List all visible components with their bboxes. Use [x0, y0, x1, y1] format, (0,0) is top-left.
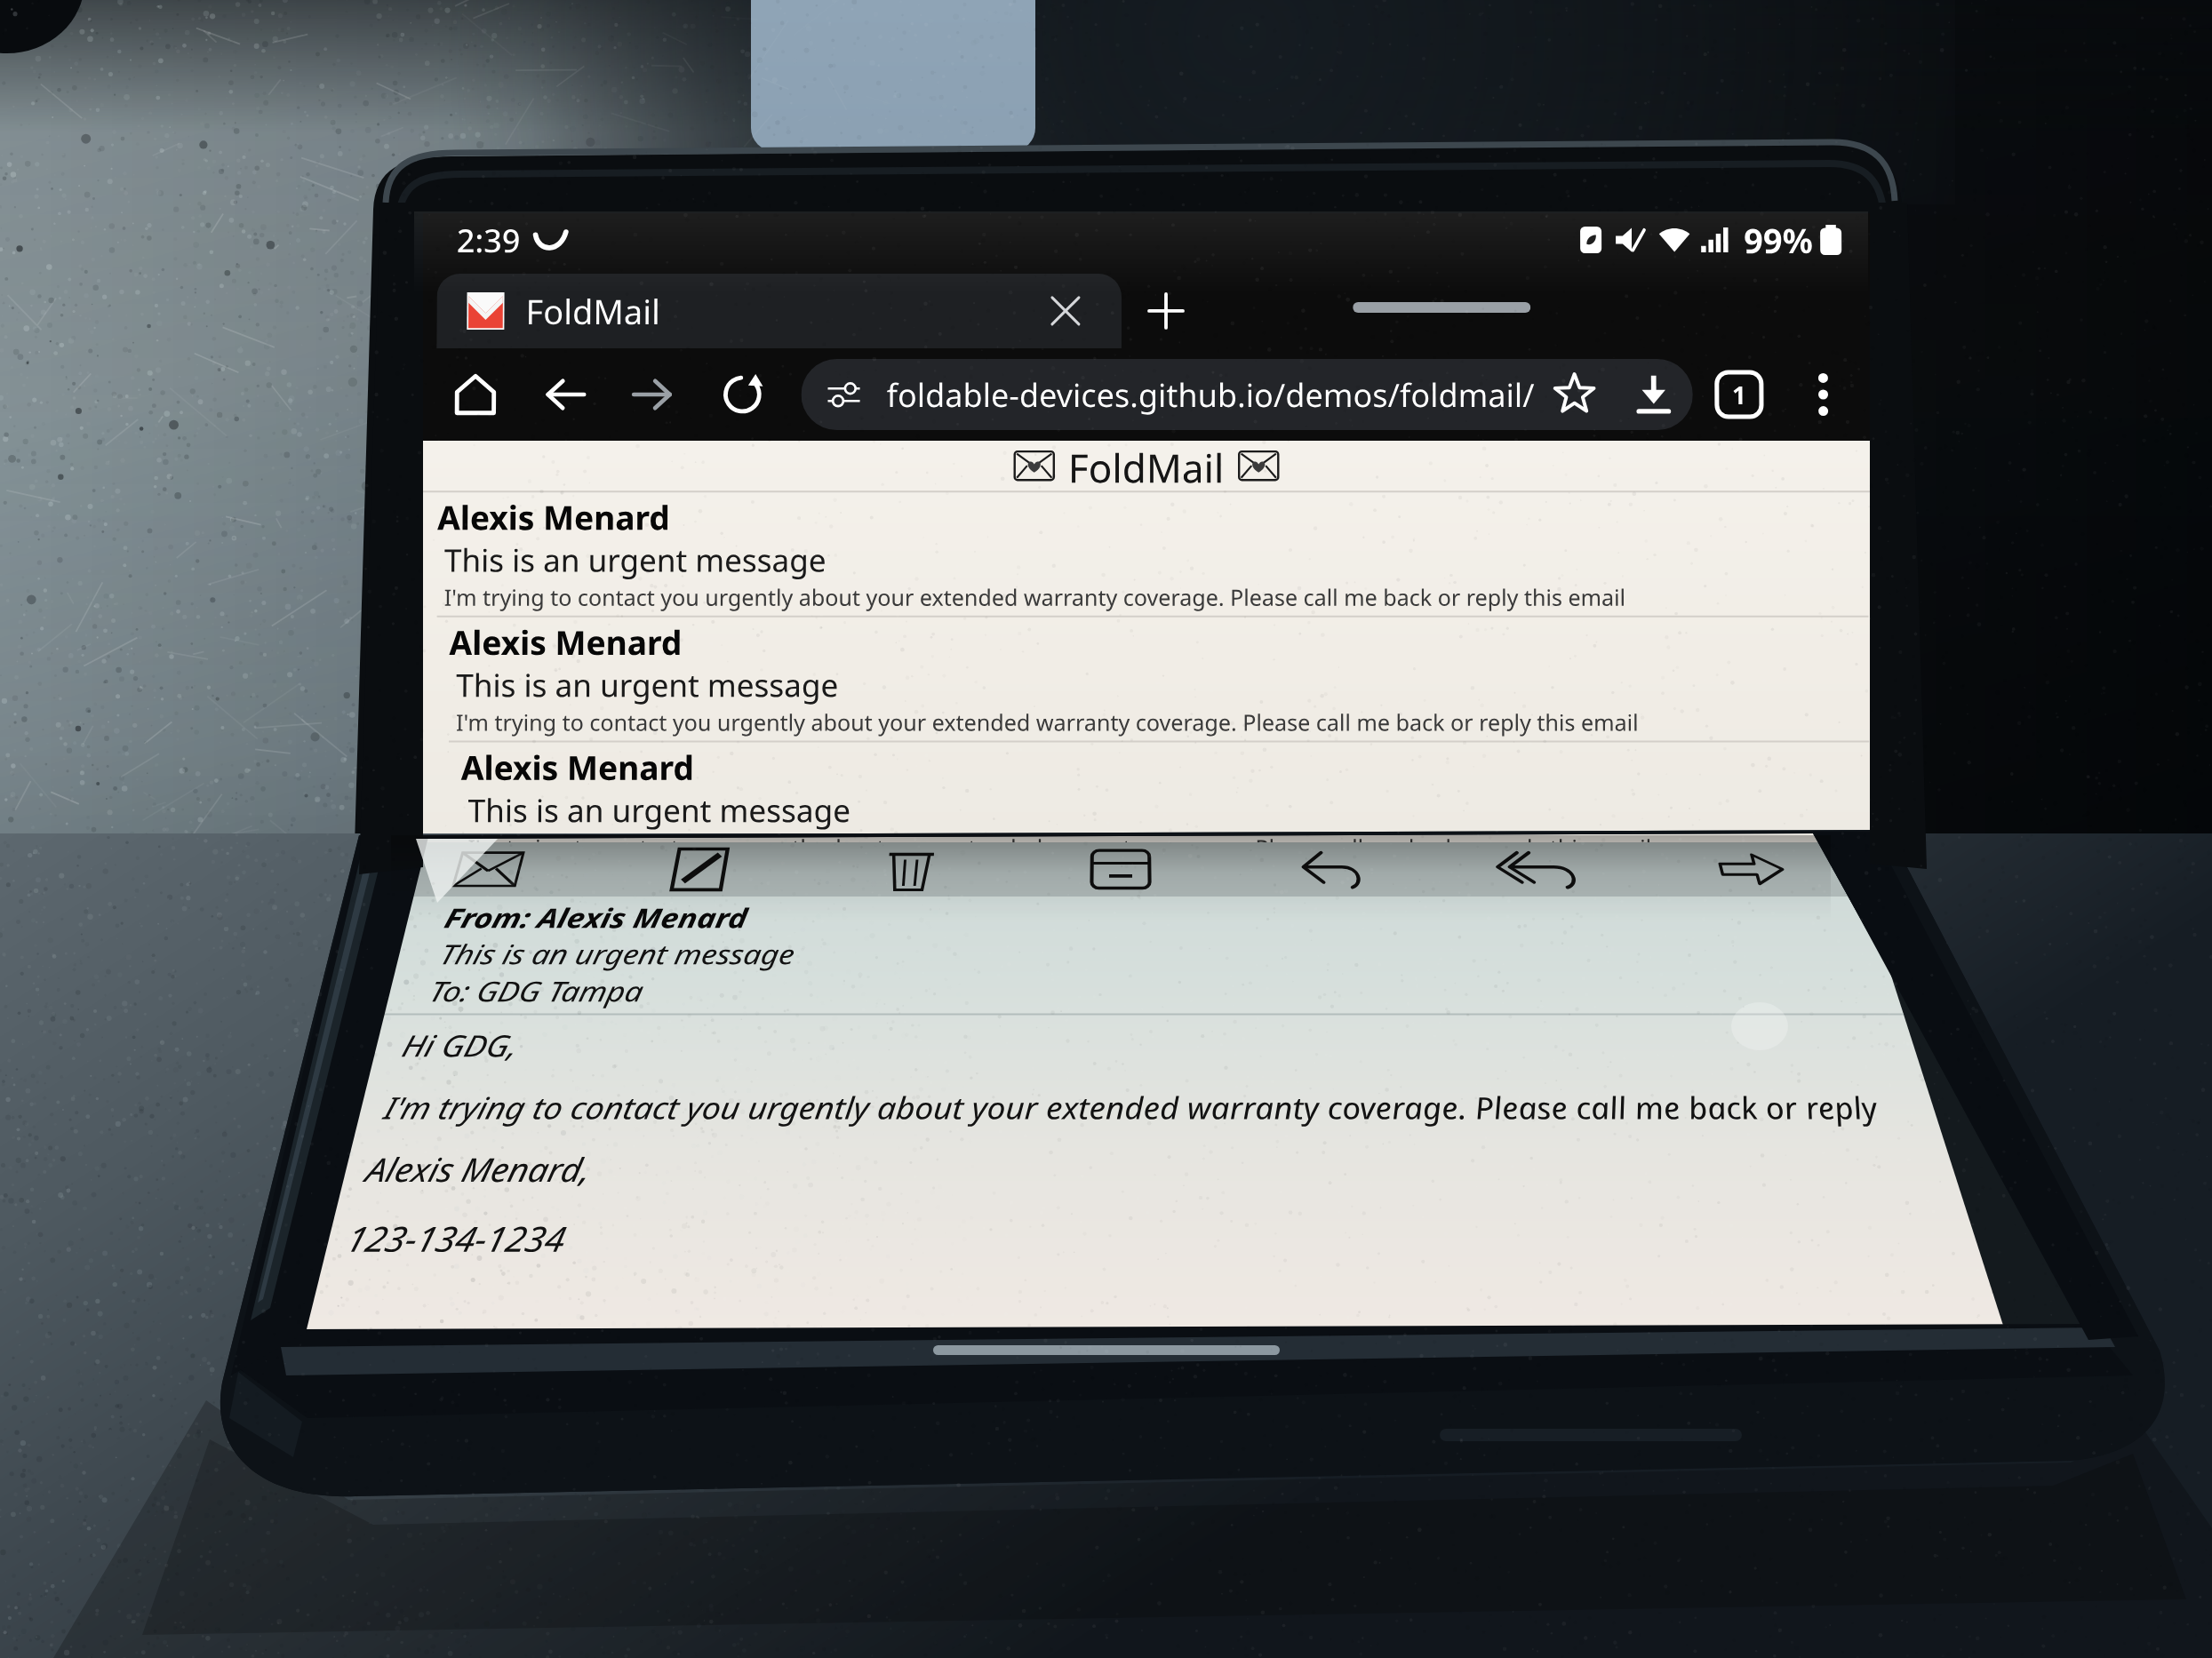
button[interactable]: Compose [587, 842, 809, 897]
staticText: 123-134-1234 [341, 1215, 571, 1262]
staticText: Alexis Menard [461, 744, 694, 789]
button[interactable]: Reload [698, 348, 787, 441]
button[interactable]: Forward [1641, 842, 1866, 897]
staticText: 1 [1732, 378, 1747, 411]
staticText: 99% [1744, 217, 1813, 263]
staticText: I'm trying to contact you urgently about… [456, 707, 1639, 737]
button[interactable]: Downloads [1614, 359, 1693, 430]
staticText: Alexis Menard, [361, 1147, 596, 1192]
staticText: FoldMail [1068, 441, 1225, 491]
button[interactable]: Home [431, 348, 520, 441]
staticText: This is an urgent message [456, 664, 839, 707]
staticText: This is an urgent message [436, 936, 798, 972]
staticText: From: Alexis Menard [441, 900, 751, 936]
button[interactable]: Alexis Menard [417, 617, 1876, 742]
staticText: This is an urgent message [444, 539, 827, 582]
button[interactable]: Bookmark [1534, 359, 1615, 430]
button[interactable]: Close tab [1034, 280, 1097, 342]
staticText: FoldMail [526, 288, 661, 334]
button[interactable]: Delete [801, 842, 1017, 897]
staticText: Alexis Menard [449, 619, 682, 664]
staticText: 2:39 [457, 219, 521, 262]
staticText: This is an urgent message [468, 789, 851, 832]
button[interactable]: Alexis Menard [416, 742, 1877, 843]
staticText: Hi GDG, [398, 1025, 523, 1066]
button[interactable]: Forward [609, 348, 698, 441]
button[interactable]: Reply all [1433, 842, 1653, 897]
staticText: I'm trying to contact you urgently about… [468, 832, 1652, 843]
button[interactable]: More options [1785, 348, 1860, 441]
staticText: foldable-devices.github.io/demos/foldmai… [887, 373, 1535, 417]
button[interactable]: Archive [1014, 842, 1227, 897]
button[interactable]: Tabs [1693, 348, 1786, 441]
button[interactable]: Back [520, 348, 609, 441]
button[interactable]: Inbox [374, 842, 600, 897]
button[interactable]: foldable-devices.github.io/demos/foldmai… [801, 359, 1693, 430]
staticText: I'm trying to contact you urgently about… [444, 582, 1626, 612]
staticText: To: GDG Tampa [425, 972, 647, 1010]
button[interactable]: New tab [1122, 274, 1211, 348]
button[interactable]: FoldMail [437, 274, 1122, 348]
button[interactable]: Alexis Menard [417, 492, 1876, 617]
staticText: I'm trying to contact you urgently about… [379, 1087, 1940, 1128]
button[interactable]: Reply [1225, 842, 1440, 897]
staticText: Alexis Menard [437, 494, 670, 539]
